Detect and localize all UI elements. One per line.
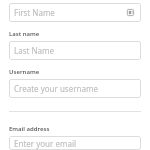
button[interactable]: First Name <box>9 3 141 22</box>
staticText: Username <box>9 68 40 76</box>
staticText: Email address <box>9 125 50 133</box>
button[interactable]: Last Name <box>9 41 141 60</box>
button[interactable]: Create your username <box>9 79 141 98</box>
button[interactable]: Enter your email <box>9 136 141 150</box>
button[interactable]: Choose from contacts <box>125 7 136 18</box>
staticText: Enter your email <box>14 138 77 149</box>
staticText: Create your username <box>14 83 98 94</box>
staticText: Last Name <box>14 45 55 56</box>
staticText: First Name <box>14 7 55 18</box>
staticText: Last name <box>9 30 40 38</box>
